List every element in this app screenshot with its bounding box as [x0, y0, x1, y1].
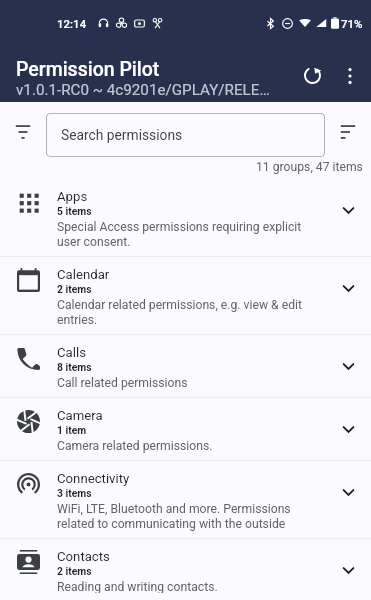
staticText: 3 items: [57, 487, 92, 499]
staticText: Search permissions: [61, 127, 183, 143]
staticText: 12:14: [57, 17, 87, 30]
button[interactable]: Apps: [0, 179, 371, 256]
button[interactable]: Camera: [0, 398, 371, 460]
staticText: Camera related permissions.: [57, 439, 213, 453]
button[interactable]: Expand: [336, 354, 360, 378]
staticText: Call related permissions: [57, 376, 188, 390]
button[interactable]: Expand: [336, 198, 360, 222]
staticText: 11 groups, 47 items: [256, 160, 363, 174]
staticText: 1 item: [57, 424, 87, 436]
button[interactable]: Expand: [336, 276, 360, 300]
button[interactable]: Filter: [11, 120, 35, 144]
button[interactable]: Calls: [0, 335, 371, 397]
button[interactable]: Search permissions: [46, 113, 325, 157]
staticText: Calendar: [57, 267, 110, 282]
button[interactable]: More options: [329, 50, 371, 98]
staticText: Connectivity: [57, 471, 130, 486]
button[interactable]: Refresh: [291, 50, 329, 98]
staticText: Calls: [57, 345, 86, 360]
staticText: Permission Pilot: [16, 58, 160, 81]
staticText: Apps: [57, 189, 88, 204]
staticText: 2 items: [57, 283, 92, 295]
button[interactable]: Expand: [336, 558, 360, 582]
button[interactable]: Expand: [336, 480, 360, 504]
staticText: Camera: [57, 408, 103, 423]
staticText: 5 items: [57, 205, 92, 217]
staticText: 71%: [341, 17, 363, 30]
staticText: WiFi, LTE, Bluetooth and more. Permissio…: [57, 502, 315, 531]
button[interactable]: Expand: [336, 417, 360, 441]
staticText: Special Access permissions requiring exp…: [57, 220, 315, 249]
button[interactable]: Contacts: [0, 539, 371, 600]
staticText: 8 items: [57, 361, 92, 373]
staticText: Calendar related permissions, e.g. view …: [57, 298, 315, 327]
button[interactable]: Sort: [336, 120, 360, 144]
staticText: 2 items: [57, 565, 92, 577]
staticText: v1.0.1-RC0 ~ 4c9201e/GPLAY/RELE…: [16, 81, 270, 99]
button[interactable]: Calendar: [0, 257, 371, 334]
staticText: Contacts: [57, 549, 110, 564]
button[interactable]: Connectivity: [0, 461, 371, 538]
staticText: Reading and writing contacts.: [57, 580, 218, 593]
